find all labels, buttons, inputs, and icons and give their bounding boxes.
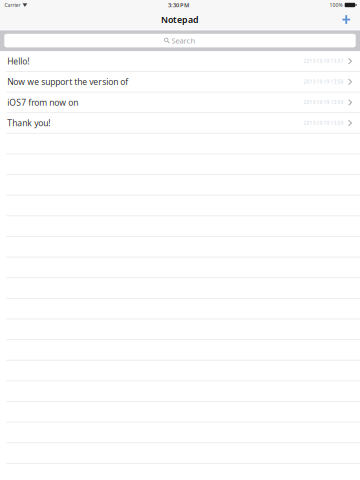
staticText: Notepad — [161, 14, 199, 26]
staticText: Search — [172, 35, 196, 46]
staticText: 3:30 PM — [168, 1, 189, 9]
button[interactable]: Hello! — [0, 51, 360, 72]
staticText: Thank you! — [7, 117, 50, 129]
staticText: Hello! — [7, 55, 29, 67]
button[interactable]: Search — [0, 30, 360, 51]
staticText: 2013-10-19 13:58 — [304, 79, 344, 85]
staticText: 2013-10-19 13:59 — [304, 120, 344, 126]
staticText: iOS7 from now on — [7, 97, 78, 108]
button[interactable]: Thank you! — [0, 113, 360, 134]
button[interactable]: New note — [332, 10, 360, 29]
button[interactable]: iOS7 from now on — [0, 92, 360, 113]
staticText: Carrier — [4, 1, 20, 8]
staticText: 2013-10-19 13:57 — [304, 58, 344, 64]
staticText: 100% — [329, 1, 342, 8]
staticText: Now we support the version of — [7, 76, 128, 88]
button[interactable]: Now we support the version of — [0, 72, 360, 92]
staticText: 2013-10-19 13:59 — [304, 99, 344, 105]
